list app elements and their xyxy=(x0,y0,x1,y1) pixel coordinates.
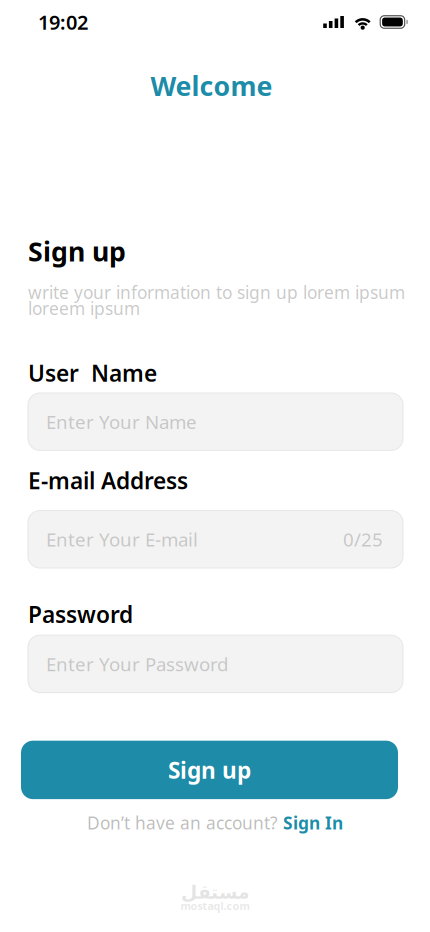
button[interactable]: Enter Your Password xyxy=(28,635,403,693)
staticText: 19:02 xyxy=(38,9,88,35)
button[interactable]: Enter Your E-mail xyxy=(28,510,403,568)
staticText: Sign up xyxy=(168,755,251,785)
button[interactable]: Enter Your Name xyxy=(28,393,403,450)
staticText: mostaql.com xyxy=(180,899,249,913)
staticText: User Name xyxy=(28,358,157,388)
staticText: Don’t have an account? xyxy=(87,811,278,834)
staticText: write your information to sign up lorem … xyxy=(28,281,405,304)
staticText: مستقل xyxy=(180,882,249,903)
staticText: Sign In xyxy=(283,811,343,834)
staticText: loreem ipsum xyxy=(28,297,140,320)
button[interactable]: Sign In xyxy=(283,811,343,834)
staticText: 0/25 xyxy=(343,527,383,552)
staticText: Sign up xyxy=(28,233,126,269)
staticText: Enter Your E-mail xyxy=(46,527,198,552)
staticText: Password xyxy=(28,599,133,629)
staticText: Enter Your Password xyxy=(46,651,228,676)
button[interactable]: Sign up xyxy=(21,741,398,799)
staticText: E-mail Address xyxy=(28,465,188,495)
staticText: Enter Your Name xyxy=(46,409,197,434)
staticText: Welcome xyxy=(150,68,272,103)
